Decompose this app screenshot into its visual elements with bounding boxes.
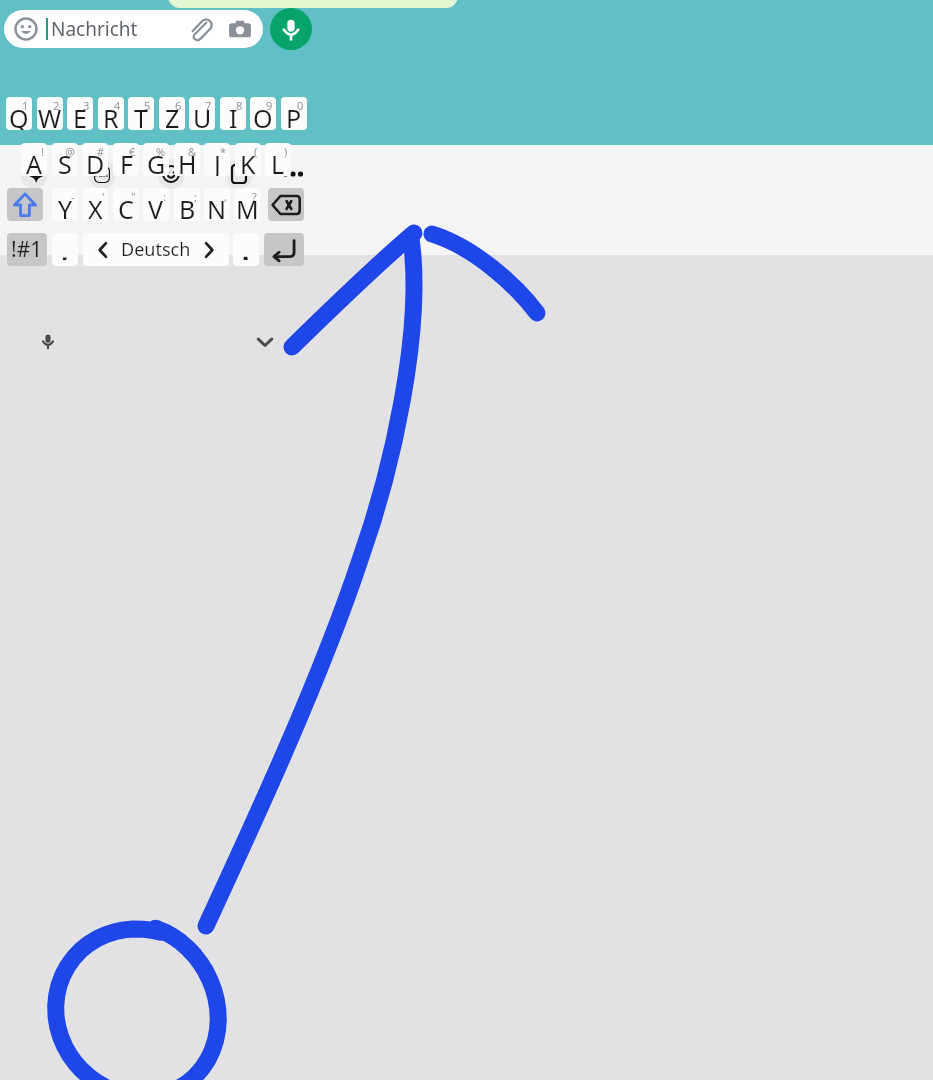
staticText: 3 <box>83 98 90 113</box>
button[interactable]: 5 <box>128 97 154 130</box>
staticText: * <box>220 144 227 159</box>
staticText: L <box>271 147 285 176</box>
button[interactable]: : <box>143 188 169 221</box>
staticText: Q <box>9 101 29 130</box>
staticText: U <box>193 101 212 130</box>
button[interactable]: " <box>113 188 139 221</box>
button[interactable]: 2 <box>37 97 63 130</box>
staticText: @ <box>65 144 75 159</box>
other: Camera <box>227 16 253 42</box>
button[interactable]: comma <box>52 233 78 266</box>
staticText: Nachricht <box>51 16 138 42</box>
staticText: : <box>163 189 166 204</box>
staticText: P <box>286 101 302 130</box>
button[interactable]: & <box>174 143 200 176</box>
button[interactable]: back <box>268 188 304 221</box>
staticText: 5 <box>144 98 151 113</box>
staticText: ( <box>254 144 258 159</box>
button[interactable]: 4 <box>98 97 124 130</box>
button[interactable]: ' <box>82 188 108 221</box>
staticText: ) <box>284 144 288 159</box>
button[interactable]: 0 <box>281 97 307 130</box>
button[interactable]: shift <box>7 188 43 221</box>
staticText: € <box>129 144 136 159</box>
staticText: C <box>118 192 134 221</box>
staticText: 6 <box>175 98 182 113</box>
button[interactable]: AI <box>21 159 47 189</box>
button[interactable]: @ <box>52 143 78 176</box>
button[interactable]: ! <box>21 143 47 176</box>
staticText: D <box>86 147 105 176</box>
staticText: % <box>156 144 166 159</box>
staticText: 8 <box>236 98 243 113</box>
button[interactable]: enter <box>264 233 304 266</box>
staticText: 0 <box>297 98 304 113</box>
other: Emoji <box>14 17 38 41</box>
button[interactable]: # <box>82 143 108 176</box>
staticText: 2 <box>53 98 60 113</box>
button[interactable]: ? <box>234 188 260 221</box>
button[interactable]: Voice input <box>39 332 57 350</box>
button[interactable]: Stickers <box>158 159 184 189</box>
button[interactable]: 7 <box>189 97 215 130</box>
staticText: !#1 <box>11 235 43 264</box>
staticText: G <box>147 147 166 176</box>
button[interactable]: 3 <box>67 97 93 130</box>
button[interactable]: !#1 <box>7 233 47 266</box>
staticText: N <box>207 192 227 221</box>
staticText: F <box>120 147 133 176</box>
staticText: V <box>148 192 164 221</box>
staticText: Y <box>58 192 73 221</box>
staticText: " <box>131 189 136 204</box>
button[interactable]: Hide keyboard <box>257 334 273 350</box>
button[interactable]: ( <box>235 143 261 176</box>
staticText: ; <box>194 189 197 204</box>
button[interactable]: Voice message <box>270 8 312 50</box>
staticText: J <box>214 147 221 176</box>
staticText: & <box>188 144 197 159</box>
staticText: Deutsch <box>121 237 191 262</box>
button[interactable]: 8 <box>220 97 246 130</box>
staticText: O <box>253 101 273 130</box>
button[interactable]: 1 <box>6 97 32 130</box>
button[interactable]: * <box>204 143 230 176</box>
staticText: A <box>26 147 42 176</box>
staticText: R <box>103 101 119 130</box>
staticText: Pass <box>95 171 109 179</box>
staticText: - <box>71 189 75 204</box>
staticText: I <box>229 101 238 130</box>
staticText: , <box>61 233 69 260</box>
button[interactable]: 9 <box>250 97 276 130</box>
button[interactable]: More <box>276 159 310 189</box>
other: Attach <box>187 16 213 42</box>
button[interactable]: - <box>52 188 78 221</box>
button[interactable]: period <box>233 233 259 266</box>
staticText: 4 <box>114 98 121 113</box>
button[interactable]: , <box>204 188 230 221</box>
button[interactable]: € <box>113 143 139 176</box>
staticText: W <box>38 101 62 130</box>
staticText: S <box>58 147 72 176</box>
staticText: ' <box>102 189 105 204</box>
staticText: 9 <box>266 98 273 113</box>
button[interactable]: 6 <box>159 97 185 130</box>
staticText: 7 <box>205 98 212 113</box>
button[interactable]: ) <box>265 143 291 176</box>
staticText: 1 <box>22 98 29 113</box>
staticText: ! <box>41 144 44 159</box>
button[interactable]: space <box>83 233 229 266</box>
button[interactable]: % <box>143 143 169 176</box>
staticText: . <box>242 233 250 260</box>
button[interactable]: Emoji <box>4 10 263 48</box>
button[interactable]: ; <box>174 188 200 221</box>
staticText: M <box>236 192 259 221</box>
staticText: ? <box>252 189 257 204</box>
staticText: B <box>179 192 196 221</box>
button[interactable]: Clipboard <box>226 159 252 189</box>
staticText: E <box>73 101 87 130</box>
staticText: # <box>97 144 105 159</box>
staticText: X <box>88 192 103 221</box>
staticText: , <box>224 189 227 204</box>
button[interactable]: Pass <box>89 159 115 189</box>
staticText: T <box>134 101 148 130</box>
